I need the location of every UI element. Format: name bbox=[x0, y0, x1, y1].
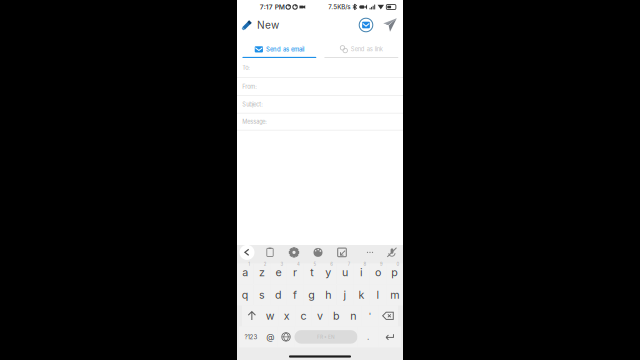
button[interactable]: Attach as email bbox=[356, 14, 376, 36]
staticText: c bbox=[300, 309, 306, 322]
button[interactable]: d bbox=[270, 284, 287, 305]
staticText: New bbox=[257, 19, 279, 31]
button[interactable]: Mute microphone bbox=[384, 244, 400, 261]
button[interactable]: Back bbox=[239, 244, 254, 261]
staticText: 7 bbox=[348, 262, 350, 267]
button[interactable]: 9 bbox=[370, 263, 386, 284]
staticText: q bbox=[242, 288, 249, 301]
button[interactable]: c bbox=[295, 305, 312, 326]
button[interactable]: Backspace bbox=[378, 305, 398, 326]
staticText: g bbox=[308, 288, 315, 301]
staticText: 8 bbox=[363, 262, 366, 267]
button[interactable]: j bbox=[337, 284, 353, 305]
staticText: p bbox=[391, 266, 398, 279]
staticText: 7:17 PM bbox=[260, 3, 285, 11]
staticText: ' bbox=[369, 311, 371, 321]
staticText: u bbox=[342, 266, 348, 279]
staticText: From: bbox=[242, 83, 257, 90]
button[interactable]: 0 bbox=[386, 263, 403, 284]
staticText: y bbox=[325, 266, 331, 279]
staticText: m bbox=[390, 288, 399, 301]
button[interactable]: 7 bbox=[337, 263, 353, 284]
button[interactable]: w bbox=[262, 305, 278, 326]
staticText: e bbox=[275, 266, 281, 279]
button[interactable]: l bbox=[370, 284, 386, 305]
staticText: 4 bbox=[297, 262, 300, 267]
button[interactable]: Stickers bbox=[310, 244, 326, 261]
button[interactable]: b bbox=[328, 305, 345, 326]
staticText: s bbox=[259, 288, 265, 301]
staticText: 1 bbox=[248, 262, 250, 267]
button[interactable]: At sign bbox=[263, 326, 277, 347]
button[interactable]: Settings bbox=[286, 244, 302, 261]
staticText: 9 bbox=[380, 262, 383, 267]
button[interactable]: f bbox=[287, 284, 303, 305]
button[interactable]: Images bbox=[334, 244, 350, 261]
button[interactable]: Period bbox=[357, 326, 378, 347]
staticText: r bbox=[293, 266, 297, 279]
staticText: @ bbox=[266, 332, 274, 342]
staticText: a bbox=[242, 266, 248, 279]
staticText: 0 bbox=[397, 262, 400, 267]
staticText: t bbox=[310, 266, 313, 279]
staticText: b bbox=[333, 309, 340, 322]
staticText: f bbox=[293, 288, 297, 301]
button[interactable]: 5 bbox=[303, 263, 320, 284]
button[interactable]: ' bbox=[361, 305, 378, 326]
staticText: j bbox=[343, 288, 346, 301]
staticText: v bbox=[317, 309, 323, 322]
staticText: k bbox=[358, 288, 364, 301]
button[interactable]: Send as link bbox=[324, 36, 398, 58]
button[interactable]: Symbols bbox=[239, 326, 263, 347]
staticText: 2 bbox=[264, 262, 267, 267]
staticText: FR • EN bbox=[317, 334, 335, 340]
button[interactable]: 2 bbox=[254, 263, 270, 284]
staticText: To: bbox=[242, 64, 250, 71]
staticText: Send as email bbox=[266, 46, 304, 53]
button[interactable]: q bbox=[237, 284, 254, 305]
staticText: 7.5KB/s bbox=[328, 3, 350, 11]
button[interactable]: s bbox=[254, 284, 270, 305]
button[interactable]: x bbox=[278, 305, 295, 326]
staticText: i bbox=[360, 266, 363, 279]
staticText: 6 bbox=[330, 262, 333, 267]
staticText: ?123 bbox=[244, 333, 257, 341]
button[interactable]: 1 bbox=[237, 263, 254, 284]
button[interactable]: 4 bbox=[287, 263, 303, 284]
staticText: l bbox=[377, 288, 380, 301]
button[interactable]: 6 bbox=[320, 263, 337, 284]
button[interactable]: 8 bbox=[353, 263, 370, 284]
staticText: d bbox=[275, 288, 282, 301]
staticText: n bbox=[350, 309, 356, 322]
staticText: Message: bbox=[242, 118, 267, 125]
button[interactable]: k bbox=[353, 284, 370, 305]
button[interactable]: Space bbox=[294, 326, 357, 347]
staticText: w bbox=[266, 309, 275, 322]
staticText: x bbox=[284, 309, 290, 322]
button[interactable]: h bbox=[320, 284, 337, 305]
staticText: . bbox=[367, 332, 369, 342]
button[interactable]: Clipboard bbox=[262, 244, 278, 261]
staticText: 5 bbox=[314, 262, 317, 267]
button[interactable]: Change language bbox=[277, 326, 294, 347]
button[interactable]: Send bbox=[380, 14, 400, 36]
staticText: o bbox=[375, 266, 381, 279]
staticText: h bbox=[325, 288, 331, 301]
button[interactable]: Compose bbox=[237, 14, 257, 36]
button[interactable]: Send as email bbox=[242, 36, 316, 58]
staticText: 3 bbox=[280, 262, 283, 267]
button[interactable]: m bbox=[386, 284, 403, 305]
staticText: Send as link bbox=[351, 46, 383, 53]
staticText: z bbox=[259, 266, 265, 279]
button[interactable]: Enter bbox=[378, 326, 401, 347]
button[interactable]: g bbox=[303, 284, 320, 305]
button[interactable]: n bbox=[345, 305, 361, 326]
button[interactable]: Shift bbox=[242, 305, 262, 326]
staticText: Subject: bbox=[242, 101, 263, 108]
button[interactable]: v bbox=[312, 305, 328, 326]
button[interactable]: More bbox=[362, 244, 378, 261]
button[interactable]: 3 bbox=[270, 263, 287, 284]
